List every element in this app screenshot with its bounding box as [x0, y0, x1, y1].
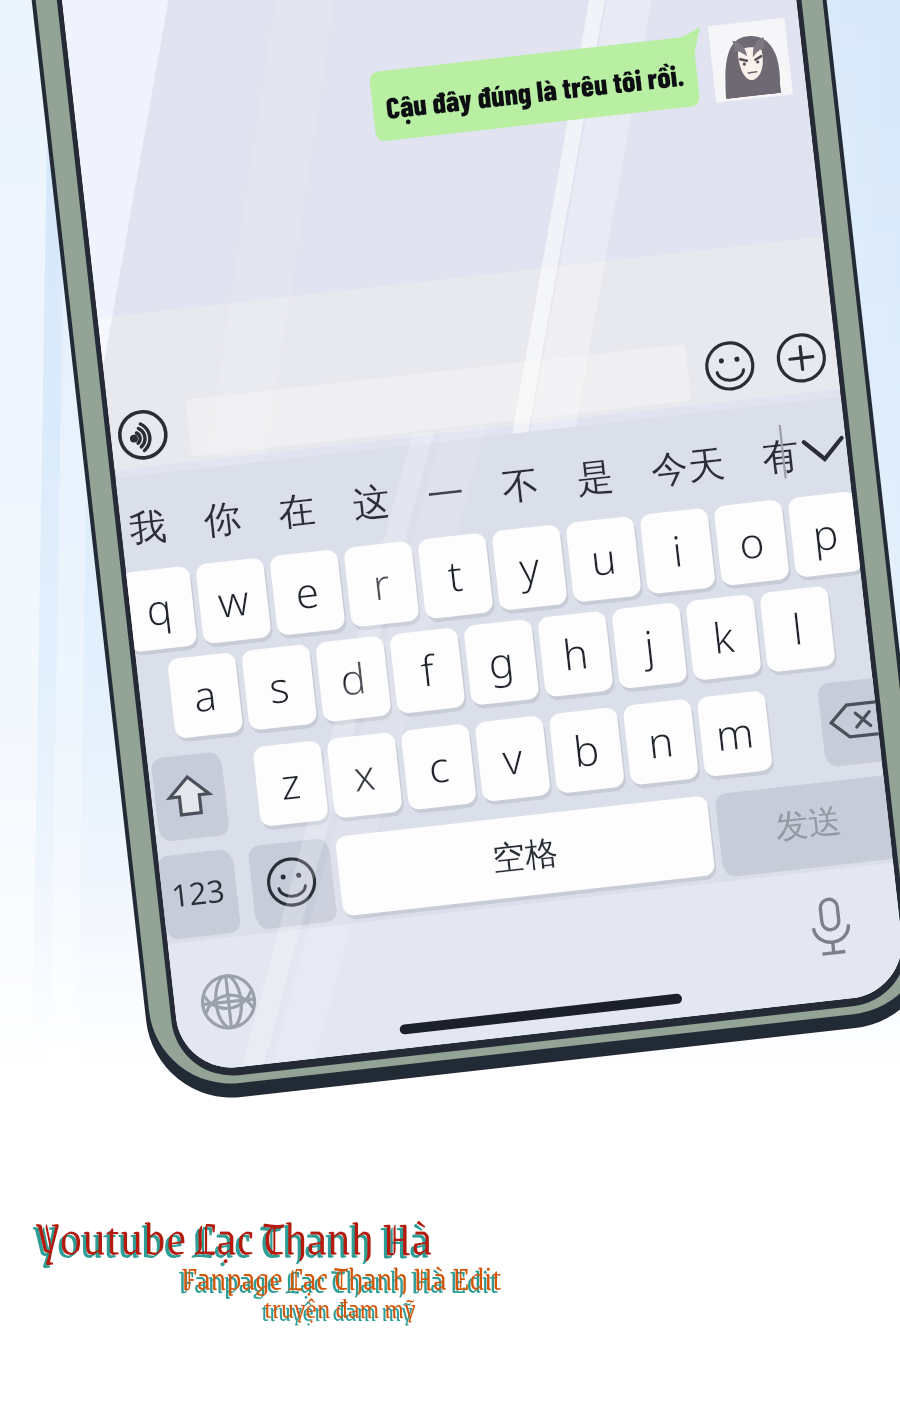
button[interactable]: Chat conversation with on-screen keyboar… — [0, 0, 900, 1413]
